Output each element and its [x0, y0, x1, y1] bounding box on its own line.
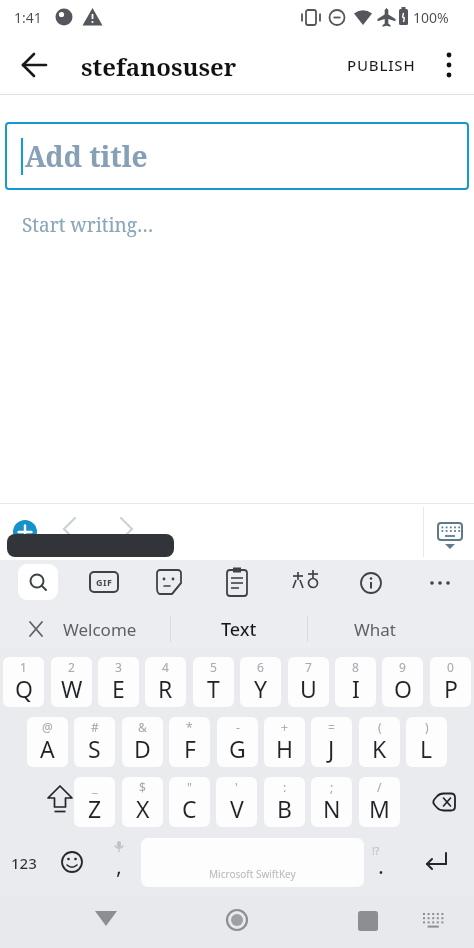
- button[interactable]: [412, 838, 464, 887]
- button[interactable]: [153, 567, 187, 599]
- button[interactable]: 8: [335, 657, 376, 707]
- staticText: Microsoft SwiftKey: [209, 867, 296, 881]
- staticText: stefanosuser: [81, 50, 237, 83]
- staticText: D: [134, 733, 151, 764]
- button[interactable]: 2: [51, 657, 92, 707]
- button[interactable]: 6: [240, 657, 281, 707]
- button[interactable]: 1: [3, 657, 44, 707]
- button[interactable]: Welcome: [44, 610, 156, 648]
- button[interactable]: ': [216, 777, 257, 827]
- staticText: 1:41: [14, 8, 42, 27]
- staticText: 5: [210, 659, 217, 675]
- button[interactable]: [52, 838, 92, 887]
- button[interactable]: *: [169, 717, 210, 767]
- staticText: GIF: [96, 576, 113, 588]
- button[interactable]: [221, 566, 253, 600]
- staticText: C: [182, 793, 197, 824]
- button[interactable]: 4: [145, 657, 186, 707]
- button[interactable]: 9: [382, 657, 423, 707]
- staticText: 3: [115, 659, 122, 675]
- staticText: 1: [20, 659, 27, 675]
- button[interactable]: [216, 899, 258, 941]
- button[interactable]: (: [359, 717, 400, 767]
- button[interactable]: [85, 901, 127, 943]
- button[interactable]: /: [359, 777, 400, 827]
- button[interactable]: ,: [100, 838, 138, 887]
- staticText: 0: [447, 659, 454, 675]
- button[interactable]: _: [74, 777, 115, 827]
- staticText: Welcome: [63, 618, 137, 641]
- staticText: 6: [257, 659, 264, 675]
- staticText: F: [184, 733, 196, 764]
- staticText: X: [136, 793, 150, 824]
- button[interactable]: [424, 572, 456, 594]
- staticText: 8: [352, 659, 359, 675]
- staticText: U: [300, 673, 317, 704]
- staticText: ,: [116, 850, 122, 880]
- staticText: @: [42, 719, 53, 735]
- staticText: 4: [162, 659, 169, 675]
- button[interactable]: +: [264, 717, 305, 767]
- staticText: P: [444, 673, 458, 704]
- staticText: Add title: [25, 137, 148, 175]
- button[interactable]: Text: [171, 610, 306, 648]
- button[interactable]: [430, 515, 470, 557]
- button[interactable]: #: [74, 717, 115, 767]
- button[interactable]: [30, 777, 90, 827]
- button[interactable]: Start writing…: [22, 208, 222, 242]
- button[interactable]: 5: [193, 657, 234, 707]
- button[interactable]: Microsoft SwiftKey: [141, 838, 364, 887]
- button[interactable]: ": [169, 777, 210, 827]
- staticText: Q: [15, 673, 33, 704]
- staticText: 123: [11, 853, 37, 873]
- button[interactable]: :: [264, 777, 305, 827]
- button[interactable]: !?: [364, 838, 398, 887]
- staticText: -: [236, 719, 240, 735]
- staticText: /: [377, 779, 382, 795]
- staticText: J: [328, 733, 335, 764]
- button[interactable]: &: [122, 717, 163, 767]
- button[interactable]: [355, 567, 387, 599]
- button[interactable]: [432, 47, 466, 83]
- button[interactable]: 3: [98, 657, 139, 707]
- staticText: B: [277, 793, 292, 824]
- button[interactable]: ): [406, 717, 447, 767]
- staticText: Y: [254, 673, 268, 704]
- button[interactable]: [18, 564, 58, 600]
- staticText: H: [276, 733, 294, 764]
- staticText: 100%: [413, 8, 449, 27]
- button[interactable]: PUBLISH: [338, 50, 424, 80]
- button[interactable]: -: [217, 717, 258, 767]
- staticText: R: [158, 673, 173, 704]
- button[interactable]: 7: [288, 657, 329, 707]
- button[interactable]: Add title: [5, 122, 469, 190]
- staticText: +: [281, 719, 288, 735]
- staticText: 9: [399, 659, 406, 675]
- button[interactable]: @: [27, 717, 68, 767]
- staticText: ;: [330, 779, 334, 795]
- button[interactable]: =: [311, 717, 352, 767]
- staticText: PUBLISH: [347, 55, 416, 75]
- button[interactable]: [415, 777, 471, 827]
- button[interactable]: 0: [430, 657, 471, 707]
- button[interactable]: [347, 900, 389, 942]
- button[interactable]: ;: [311, 777, 352, 827]
- staticText: G: [229, 733, 246, 764]
- staticText: S: [88, 733, 101, 764]
- button[interactable]: GIF: [86, 568, 122, 596]
- staticText: Start writing…: [22, 212, 154, 238]
- staticText: A: [40, 733, 55, 764]
- button[interactable]: What: [308, 610, 441, 648]
- button[interactable]: 123: [2, 838, 46, 887]
- staticText: ': [235, 779, 238, 795]
- button[interactable]: [13, 520, 37, 544]
- button[interactable]: [414, 902, 452, 940]
- staticText: =: [328, 719, 335, 735]
- button[interactable]: [288, 566, 322, 600]
- staticText: What: [354, 618, 396, 641]
- button[interactable]: $: [122, 777, 163, 827]
- staticText: 7: [305, 659, 312, 675]
- staticText: *: [186, 719, 193, 735]
- button[interactable]: [9, 39, 61, 91]
- staticText: M: [369, 793, 390, 824]
